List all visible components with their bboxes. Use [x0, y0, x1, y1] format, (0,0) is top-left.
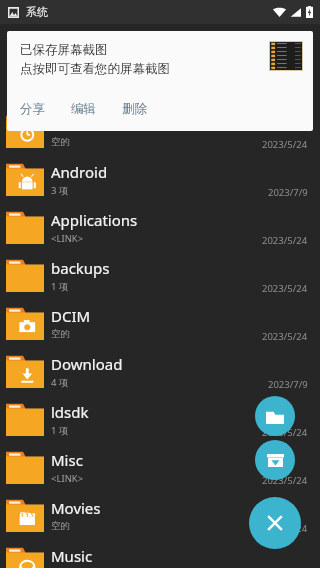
staticText: 删除: [122, 101, 147, 117]
staticText: 点按即可查看您的屏幕截图: [20, 61, 170, 77]
staticText: Misc: [51, 450, 83, 470]
staticText: 编辑: [71, 101, 96, 117]
staticText: 空的: [51, 328, 70, 340]
button[interactable]: Extract: [255, 440, 295, 480]
button[interactable]: 编辑: [69, 99, 98, 119]
staticText: Download: [51, 354, 123, 374]
staticText: <LINK>: [51, 232, 84, 245]
button[interactable]: Music: [0, 539, 320, 568]
staticText: backups: [51, 258, 110, 278]
staticText: Music: [51, 546, 93, 566]
staticText: 空的: [51, 520, 70, 532]
button[interactable]: 已保存屏幕截图: [7, 31, 313, 131]
button[interactable]: Download: [0, 347, 320, 395]
staticText: Applications: [51, 210, 138, 230]
button[interactable]: backups: [0, 251, 320, 299]
staticText: 2023/5/24: [262, 330, 308, 343]
button[interactable]: Alarms: [0, 107, 320, 155]
staticText: Android: [51, 162, 108, 182]
button[interactable]: 删除: [120, 99, 149, 119]
staticText: 空的: [51, 136, 70, 148]
staticText: 1 项: [51, 280, 69, 293]
button[interactable]: Movies: [0, 491, 320, 539]
button[interactable]: DCIM: [0, 299, 320, 347]
staticText: 已保存屏幕截图: [20, 42, 108, 58]
staticText: 2023/5/24: [262, 138, 308, 151]
staticText: 系统: [26, 5, 48, 19]
staticText: 3 项: [51, 184, 69, 197]
staticText: 2023/7/9: [268, 186, 308, 199]
staticText: 分享: [20, 101, 45, 117]
staticText: 4 项: [51, 376, 69, 389]
button[interactable]: Close: [249, 497, 301, 549]
staticText: 2023/5/24: [262, 426, 308, 439]
staticText: 2023/5/24: [262, 474, 308, 487]
button[interactable]: New folder: [255, 396, 295, 436]
button[interactable]: Applications: [0, 203, 320, 251]
button[interactable]: Android: [0, 155, 320, 203]
button[interactable]: Misc: [0, 443, 320, 491]
staticText: Movies: [51, 498, 101, 518]
staticText: 1 项: [51, 424, 69, 437]
button[interactable]: 分享: [18, 99, 47, 119]
button[interactable]: ldsdk: [0, 395, 320, 443]
staticText: 2023/5/24: [262, 282, 308, 295]
staticText: <LINK>: [51, 472, 84, 485]
staticText: DCIM: [51, 306, 91, 326]
staticText: 2023/7/9: [268, 378, 308, 391]
staticText: Alarms: [51, 114, 101, 134]
staticText: 2023/5/24: [262, 522, 308, 535]
staticText: ldsdk: [51, 402, 89, 422]
staticText: 2023/5/24: [262, 234, 308, 247]
